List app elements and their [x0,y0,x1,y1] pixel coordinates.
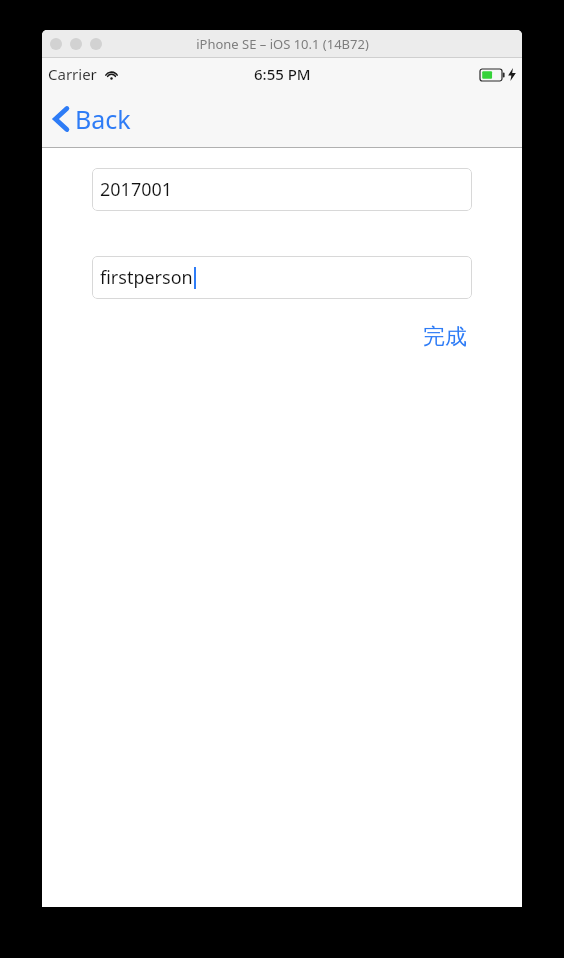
staticText: Back [75,102,131,136]
button[interactable]: firstperson [92,256,472,299]
button[interactable]: 2017001 [92,168,472,211]
staticText: iPhone SE – iOS 10.1 (14B72) [196,35,369,53]
staticText: 2017001 [100,177,173,202]
button[interactable]: Back [42,96,143,142]
button[interactable]: 完成 [417,319,473,355]
staticText: 6:55 PM [254,64,311,84]
button[interactable]: Window button [50,38,62,50]
button[interactable]: Window button [70,38,82,50]
button[interactable]: Window button [90,38,102,50]
staticText: Carrier [48,64,97,84]
staticText: firstperson [100,265,193,290]
staticText: 完成 [423,323,467,351]
